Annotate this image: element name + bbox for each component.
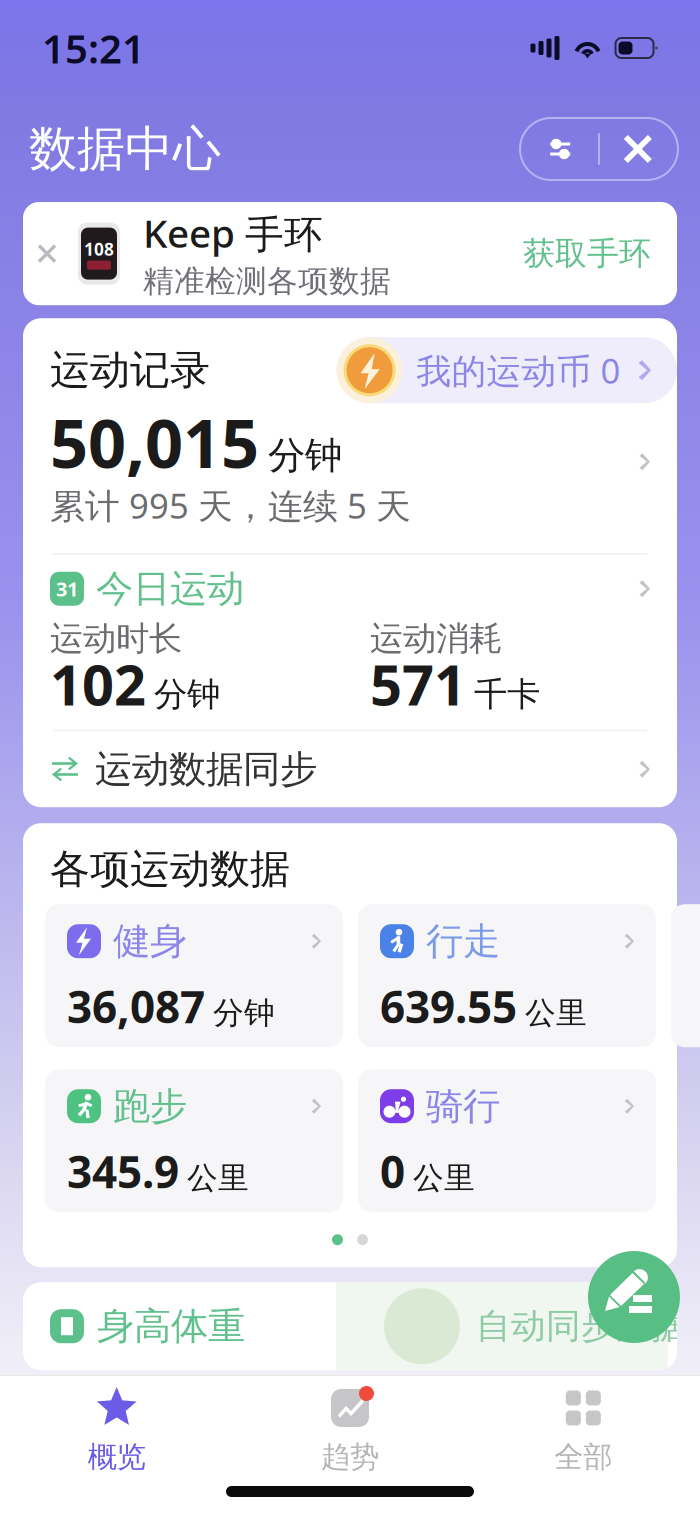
staticText: 我的运动币 0	[417, 347, 621, 393]
staticText: 累计 995 天，连续 5 天	[50, 482, 411, 528]
button[interactable]: 骑行	[358, 1069, 656, 1212]
staticText: 345.9	[67, 1142, 179, 1200]
button[interactable]: 趋势	[233, 1376, 467, 1486]
button[interactable]: 全部	[467, 1376, 700, 1486]
staticText: 分钟	[213, 994, 275, 1032]
staticText: 31	[56, 575, 78, 602]
staticText: 精准检测各项数据	[143, 262, 391, 300]
button[interactable]: Filter	[522, 118, 598, 180]
staticText: 获取手环	[523, 234, 651, 273]
staticText: 健身	[113, 918, 187, 964]
staticText: 概览	[88, 1439, 146, 1475]
staticText: 今日运动	[96, 566, 244, 612]
staticText: 15:21	[42, 21, 145, 74]
staticText: 公里	[187, 1159, 249, 1197]
staticText: 102	[50, 646, 146, 721]
staticText: 运动数据同步	[95, 746, 317, 792]
staticText: 571	[370, 646, 466, 721]
button[interactable]: 运动数据同步	[23, 731, 677, 807]
staticText: 骑行	[426, 1083, 500, 1129]
button[interactable]: 31	[23, 555, 677, 730]
staticText: 趋势	[321, 1439, 379, 1475]
button[interactable]: 108	[23, 202, 677, 305]
staticText: 全部	[554, 1439, 612, 1475]
staticText: 公里	[413, 1159, 475, 1197]
button[interactable]: 健身	[45, 904, 343, 1047]
staticText: 数据中心	[29, 119, 221, 178]
button[interactable]: Close	[600, 118, 676, 180]
button[interactable]: 我的运动币 0	[337, 337, 677, 403]
staticText: 行走	[426, 918, 500, 964]
staticText: 身高体重	[97, 1303, 245, 1349]
staticText: 千卡	[474, 674, 540, 715]
button[interactable]: 跑步	[45, 1069, 343, 1212]
staticText: 分钟	[268, 433, 342, 479]
staticText: 运动时长	[50, 618, 182, 659]
button[interactable]: 运动记录	[23, 318, 677, 553]
staticText: 运动记录	[50, 346, 210, 395]
staticText: 分钟	[154, 674, 220, 715]
button[interactable]: 行走	[358, 904, 656, 1047]
button[interactable]: Record	[588, 1251, 680, 1343]
staticText: 公里	[525, 994, 587, 1032]
staticText: 各项运动数据	[50, 845, 290, 894]
staticText: 运动消耗	[370, 618, 502, 659]
staticText: 639.55	[380, 977, 517, 1035]
staticText: 跑步	[113, 1083, 187, 1129]
staticText: 108	[84, 238, 114, 261]
staticText: 自动同步数据	[476, 1305, 686, 1347]
staticText: Keep 手环	[143, 207, 323, 258]
button[interactable]: 概览	[0, 1376, 233, 1486]
staticText: 0	[380, 1142, 405, 1200]
staticText: 36,087	[67, 977, 205, 1035]
staticText: 50,015	[50, 398, 259, 486]
